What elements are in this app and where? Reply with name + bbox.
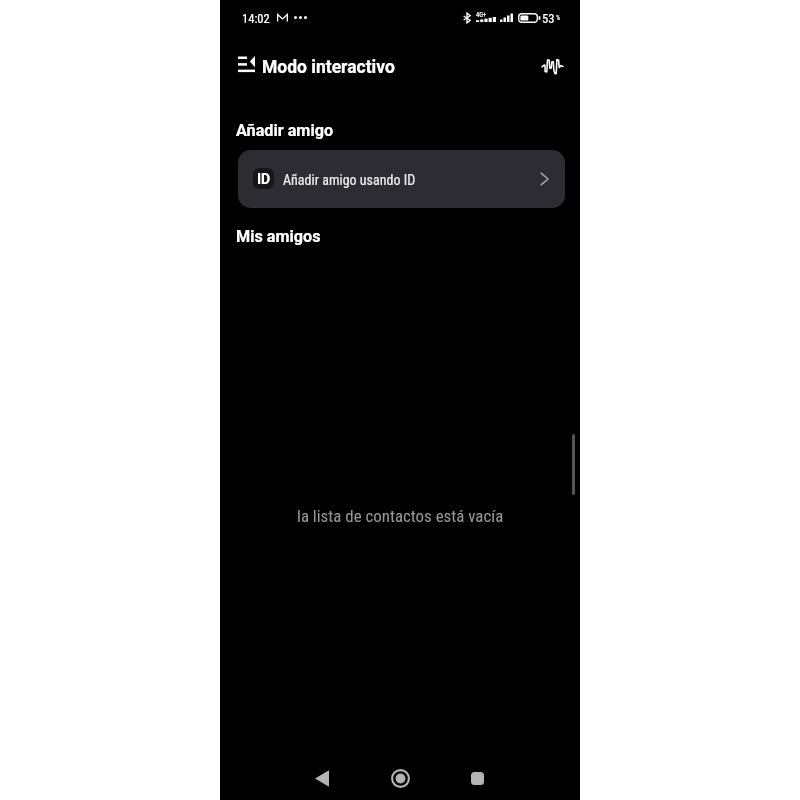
staticText: Mis amigos	[236, 227, 321, 246]
staticText: Añadir amigo	[236, 121, 334, 140]
button[interactable]: Back	[300, 756, 344, 800]
staticText: %	[556, 14, 561, 22]
button[interactable]: Filter list	[233, 51, 259, 77]
staticText: Añadir amigo usando ID	[283, 172, 416, 188]
button[interactable]: Home	[378, 756, 422, 800]
button[interactable]: Voice waveform	[538, 52, 566, 80]
staticText: 53	[542, 11, 555, 26]
button[interactable]: ID	[238, 150, 565, 208]
staticText: 14:02	[242, 11, 270, 26]
button[interactable]: Recent apps	[455, 756, 499, 800]
staticText: ID	[257, 171, 271, 187]
staticText: 4G+	[476, 11, 487, 19]
staticText: la lista de contactos está vacía	[297, 506, 504, 526]
staticText: Modo interactivo	[262, 57, 395, 78]
